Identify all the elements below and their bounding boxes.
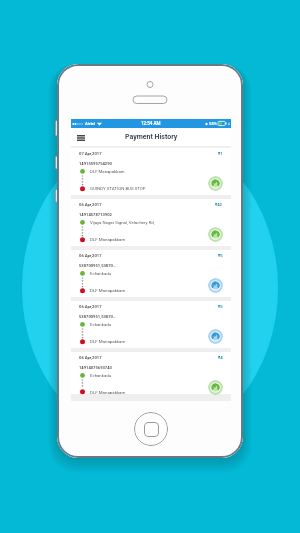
staticText: DLF Manapakkam <box>90 169 125 174</box>
button[interactable]: Trip status <box>208 176 223 191</box>
staticText: Echankadu <box>90 373 112 378</box>
button[interactable]: Trip status <box>208 329 223 344</box>
button[interactable]: 07 Apr,2017 <box>71 148 231 195</box>
button[interactable]: 06 Apr,2017 <box>71 301 231 348</box>
staticText: Echankadu <box>90 322 112 327</box>
staticText: 06 Apr,2017 <box>79 253 102 258</box>
button[interactable]: Trip status <box>208 278 223 293</box>
staticText: ₹5 <box>218 253 223 258</box>
staticText: 06 Apr,2017 <box>79 355 102 360</box>
staticText: 12:54 AM <box>141 121 161 126</box>
staticText: 06 Apr,2017 <box>79 202 102 207</box>
button[interactable]: Trip status <box>208 227 223 242</box>
staticText: 538700951,53870... <box>79 314 117 319</box>
staticText: DLF Manapakkam <box>90 237 126 242</box>
staticText: 14914075693743 <box>79 365 112 370</box>
staticText: DLF Manapakkam <box>90 339 126 344</box>
button[interactable]: Home <box>134 412 168 446</box>
button[interactable]: Menu <box>75 132 86 143</box>
staticText: 14914578713902 <box>79 212 112 217</box>
staticText: Vijaya Nagar Signal, Velachery Rd, <box>90 220 155 225</box>
button[interactable]: Trip status <box>208 380 223 395</box>
staticText: ₹5 <box>218 304 223 309</box>
staticText: DLF Manapakkam <box>90 288 126 293</box>
staticText: 06 Apr,2017 <box>79 304 102 309</box>
staticText: ₹42 <box>215 202 223 207</box>
staticText: ₹1 <box>218 151 223 156</box>
staticText: 538700951,53870... <box>79 263 117 268</box>
button[interactable]: 06 Apr,2017 <box>71 199 231 246</box>
staticText: 07 Apr,2017 <box>79 151 102 156</box>
staticText: 55% <box>209 121 217 126</box>
staticText: ₹4 <box>218 355 223 360</box>
staticText: GUINDY STATION BUS STOP <box>90 186 146 191</box>
staticText: 14915595754290 <box>79 161 112 166</box>
staticText: Payment History <box>125 133 178 141</box>
staticText: Echankadu <box>90 271 112 276</box>
button[interactable]: 06 Apr,2017 <box>71 352 231 394</box>
staticText: Airtel <box>85 121 96 126</box>
button[interactable]: 06 Apr,2017 <box>71 250 231 297</box>
staticText: DLF Manapakkam <box>90 390 126 394</box>
